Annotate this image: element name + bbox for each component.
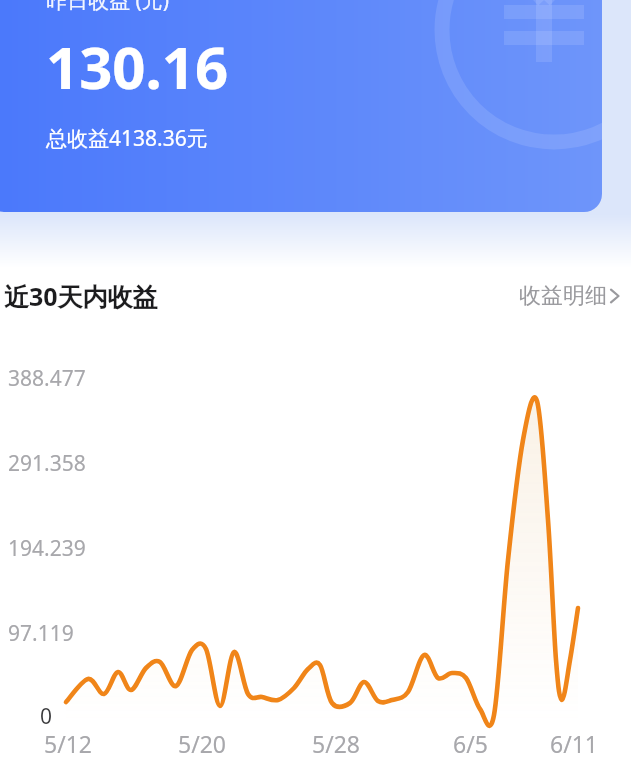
staticText: 291.358 [8, 449, 86, 478]
staticText: 昨日收益 (元) [46, 0, 170, 15]
staticText: 收益明细 [519, 282, 607, 310]
staticText: 近30天内收益 [4, 279, 158, 313]
button[interactable]: 昨日收益 (元) [0, 0, 602, 212]
staticText: 5/12 [44, 728, 102, 759]
staticText: 130.16 [46, 27, 229, 106]
staticText: 0 [40, 702, 53, 731]
staticText: 6/11 [550, 728, 608, 759]
staticText: 总收益4138.36元 [46, 124, 208, 153]
button[interactable]: 收益明细 [515, 276, 627, 316]
staticText: 97.119 [8, 619, 74, 648]
staticText: 6/5 [453, 728, 511, 759]
staticText: 388.477 [8, 364, 86, 393]
staticText: 5/28 [312, 728, 370, 759]
staticText: 5/20 [178, 728, 236, 759]
staticText: 194.239 [8, 534, 86, 563]
